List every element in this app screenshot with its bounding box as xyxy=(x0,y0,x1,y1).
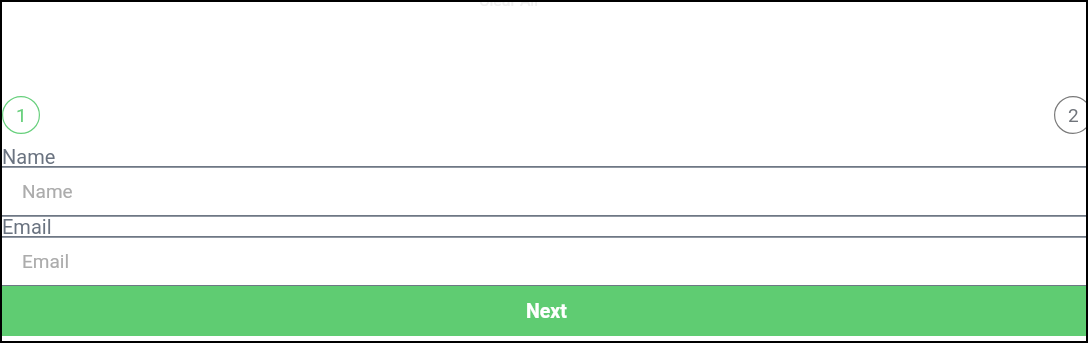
button[interactable]: Email xyxy=(2,236,1086,285)
button[interactable]: Step 2 xyxy=(1054,96,1086,134)
staticText: Name xyxy=(22,180,73,202)
button[interactable]: Next xyxy=(2,286,1086,336)
button[interactable]: Name xyxy=(2,166,1086,215)
staticText: Name xyxy=(2,145,56,166)
staticText: Email xyxy=(22,250,70,272)
staticText: 2 xyxy=(1068,104,1079,126)
staticText: 1 xyxy=(16,104,27,126)
staticText: Email xyxy=(2,215,52,236)
button[interactable]: Step 1, current xyxy=(2,96,40,134)
staticText: Clear All xyxy=(479,2,539,10)
staticText: Next xyxy=(526,300,567,323)
